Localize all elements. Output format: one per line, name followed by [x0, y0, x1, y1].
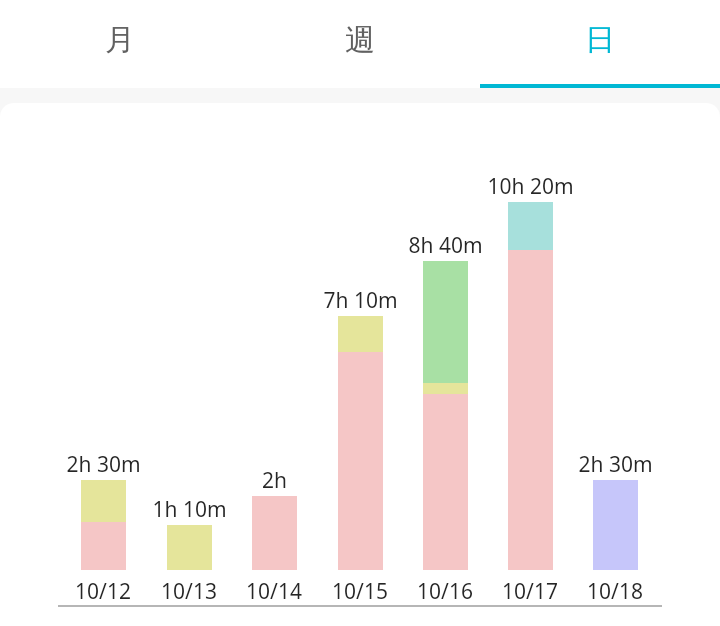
button[interactable]: 週: [240, 0, 480, 88]
staticText: 10/12: [75, 577, 131, 606]
staticText: 10h 20m: [487, 172, 574, 200]
staticText: 週: [345, 21, 375, 59]
button[interactable]: 2h: [204, 466, 344, 494]
staticText: 2h: [262, 466, 287, 494]
staticText: 日: [585, 21, 615, 59]
button[interactable]: 8h 40m: [375, 231, 515, 259]
button[interactable]: 月: [0, 0, 240, 88]
staticText: 8h 40m: [408, 231, 483, 259]
staticText: 月: [105, 21, 135, 59]
staticText: 10/13: [161, 577, 217, 606]
staticText: 10/17: [502, 577, 558, 606]
staticText: 7h 10m: [323, 286, 398, 314]
button[interactable]: 7h 10m: [290, 286, 430, 314]
staticText: 1h 10m: [152, 495, 227, 523]
button[interactable]: 日: [480, 0, 720, 88]
staticText: 10/18: [587, 577, 643, 606]
button[interactable]: 1h 10m: [119, 495, 259, 523]
button[interactable]: 2h 30m: [33, 450, 173, 478]
button[interactable]: 2h 30m: [545, 450, 685, 478]
staticText: 10/15: [332, 577, 388, 606]
button[interactable]: 10h 20m: [460, 172, 600, 200]
staticText: 10/16: [417, 577, 473, 606]
staticText: 2h 30m: [578, 450, 653, 478]
staticText: 2h 30m: [66, 450, 141, 478]
staticText: 10/14: [246, 577, 302, 606]
